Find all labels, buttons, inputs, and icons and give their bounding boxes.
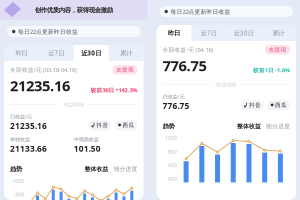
staticText: 中视频收益 bbox=[74, 136, 99, 143]
staticText: 每日22点更新昨日收益 bbox=[18, 28, 78, 35]
staticText: 较前30日 +142.3% bbox=[90, 86, 137, 94]
button[interactable]: 近30日 bbox=[74, 45, 109, 61]
staticText: 近7日 bbox=[201, 29, 217, 37]
staticText: 去提现 bbox=[268, 46, 286, 53]
staticText: 776.75 bbox=[162, 55, 206, 75]
staticText: 累计 bbox=[273, 29, 285, 37]
button[interactable]: 近7日 bbox=[191, 25, 226, 41]
staticText: 1000 bbox=[165, 134, 177, 142]
button[interactable]: 抖音 bbox=[241, 100, 264, 110]
button[interactable]: 西瓜 bbox=[267, 100, 290, 110]
button[interactable]: 每日22点更新昨日收益 bbox=[159, 6, 293, 17]
button[interactable]: 昨日 bbox=[4, 45, 39, 61]
staticText: 近7日 bbox=[48, 49, 64, 57]
staticText: 800 bbox=[168, 148, 177, 155]
staticText: 每日22点更新昨日收益 bbox=[170, 8, 230, 15]
staticText: 创作优质内容，获得现金激励 bbox=[35, 6, 113, 14]
staticText: 1000 bbox=[12, 177, 24, 184]
button[interactable]: 近30日 bbox=[226, 25, 261, 41]
staticText: 600 bbox=[168, 161, 177, 169]
staticText: 抖音 bbox=[96, 122, 108, 129]
staticText: 近30日 bbox=[81, 49, 101, 57]
staticText: 总收益/元 bbox=[162, 93, 184, 100]
staticText: 全部收益/元 (03.18-04.16) bbox=[10, 66, 77, 73]
staticText: 整体收益 bbox=[84, 165, 108, 173]
staticText: 较前1日 -1.6% bbox=[253, 66, 290, 74]
staticText: 趋势 bbox=[162, 122, 174, 130]
staticText: 收益明细 bbox=[64, 101, 84, 108]
button[interactable]: 累计 bbox=[261, 25, 296, 41]
staticText: 800 bbox=[15, 191, 24, 198]
button[interactable]: 细分进度 bbox=[108, 165, 137, 173]
staticText: 21235.16 bbox=[10, 120, 47, 131]
staticText: 整体收益 bbox=[237, 123, 261, 130]
button[interactable]: 整体收益 bbox=[84, 165, 108, 173]
button[interactable]: 近7日 bbox=[39, 45, 74, 61]
button[interactable]: 细分进度 bbox=[261, 123, 290, 130]
staticText: 去提现 bbox=[116, 66, 134, 73]
staticText: 21235.16 bbox=[10, 75, 70, 95]
button[interactable]: 整体收益 bbox=[237, 123, 261, 130]
staticText: 400 bbox=[168, 175, 177, 182]
staticText: 昨日 bbox=[168, 29, 180, 37]
button[interactable]: 昨日 bbox=[156, 25, 191, 41]
staticText: 西瓜 bbox=[122, 122, 134, 129]
button[interactable]: 累计 bbox=[109, 45, 143, 61]
staticText: 21133.66 bbox=[10, 143, 47, 154]
button[interactable]: 抖音 bbox=[88, 120, 111, 130]
button[interactable]: 去提现 bbox=[112, 65, 137, 74]
staticText: 日收益/元 bbox=[10, 113, 32, 120]
staticText: 抖音 bbox=[249, 102, 261, 109]
staticText: 全部收益/元 (04.16) bbox=[162, 46, 213, 53]
staticText: 近30日 bbox=[234, 29, 254, 37]
staticText: 776.75 bbox=[162, 100, 189, 111]
button[interactable]: 去提现 bbox=[265, 45, 290, 54]
staticText: 累计 bbox=[120, 49, 132, 57]
staticText: 收益明细 bbox=[216, 81, 236, 88]
button[interactable]: 西瓜 bbox=[114, 120, 137, 130]
button[interactable]: 每日22点更新昨日收益 bbox=[7, 26, 140, 37]
staticText: 单独收益 bbox=[10, 136, 30, 143]
staticText: 细分进度 bbox=[266, 123, 290, 130]
staticText: 细分进度 bbox=[113, 165, 137, 173]
staticText: 昨日 bbox=[15, 49, 27, 57]
staticText: 西瓜 bbox=[275, 102, 287, 109]
staticText: 101.50 bbox=[74, 143, 101, 154]
staticText: 趋势 bbox=[10, 165, 22, 173]
